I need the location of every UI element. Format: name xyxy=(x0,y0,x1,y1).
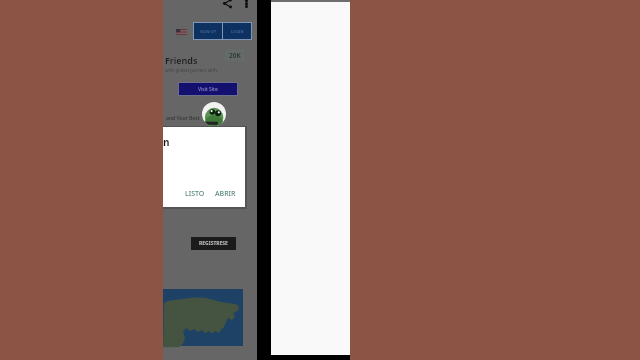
staticText: and Your Best xyxy=(166,115,200,122)
staticText: LOGIN xyxy=(231,29,244,34)
staticText: LISTO xyxy=(185,189,205,199)
button[interactable]: SIGN UP xyxy=(194,23,222,39)
staticText: with global gamers with. xyxy=(165,67,219,73)
button[interactable]: LISTO xyxy=(180,186,210,202)
staticText: 20K xyxy=(229,51,241,60)
button[interactable]: LOGIN xyxy=(223,23,251,39)
staticText: ABRIR xyxy=(215,189,236,199)
button[interactable]: More options xyxy=(244,0,249,8)
staticText: Friends xyxy=(165,54,198,66)
staticText: Visit Site xyxy=(198,86,218,93)
staticText: SIGN UP xyxy=(200,29,216,34)
button[interactable]: ABRIR xyxy=(210,186,241,202)
staticText: REGISTRESE xyxy=(199,240,228,247)
button[interactable]: Language xyxy=(174,25,189,38)
button[interactable]: 20K xyxy=(225,49,244,61)
button[interactable]: Share xyxy=(222,0,233,9)
button[interactable]: Visit Site xyxy=(179,83,237,95)
staticText: n xyxy=(163,135,170,149)
button[interactable]: REGISTRESE xyxy=(191,237,236,250)
